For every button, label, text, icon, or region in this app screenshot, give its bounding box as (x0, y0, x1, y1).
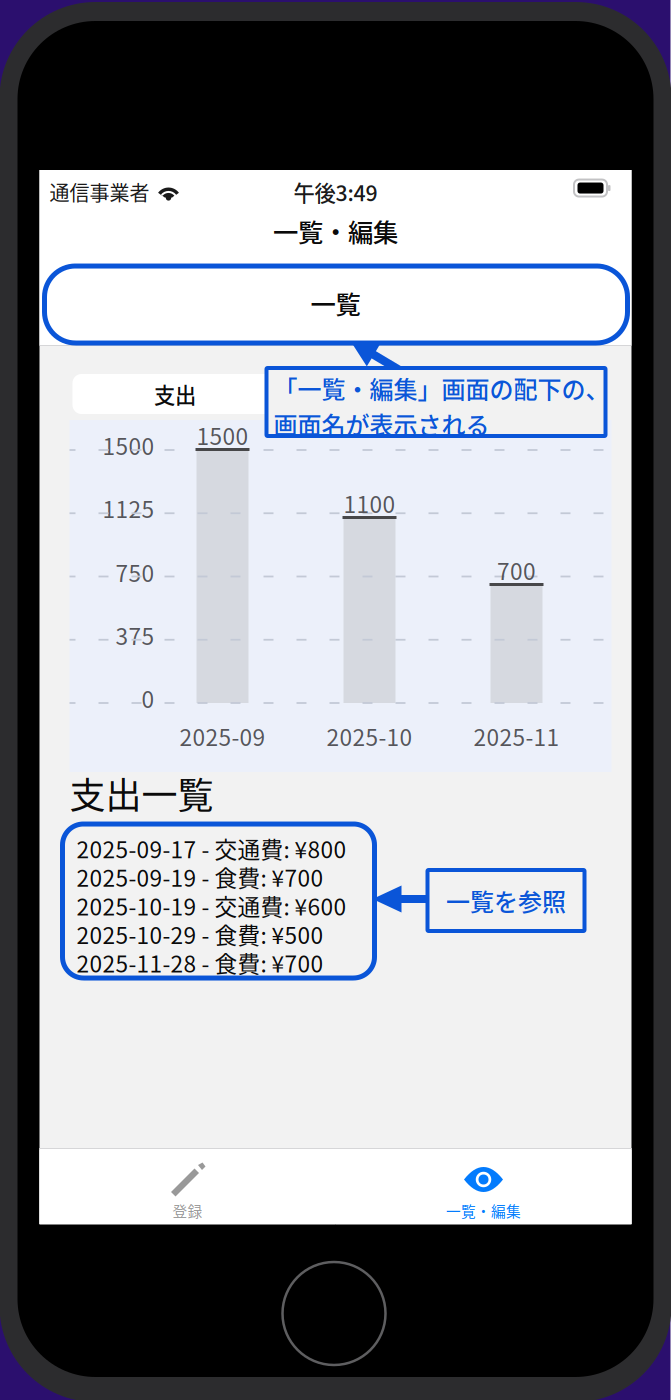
staticText: 1500 (196, 419, 248, 451)
button[interactable]: 登録 (39, 1148, 335, 1224)
staticText: 1125 (102, 492, 154, 524)
staticText: 支出一覧 (69, 767, 213, 819)
staticText: 2025-10 (326, 720, 412, 752)
staticText: 2025-09 (179, 720, 265, 752)
staticText: 2025-10-19 - 交通費: ¥600 (76, 889, 346, 922)
staticText: 画面名が表示される (273, 406, 489, 441)
staticText: 2025-11-28 - 食費: ¥700 (76, 946, 323, 979)
staticText: 一覧 (310, 285, 360, 321)
staticText: 375 (115, 619, 154, 651)
staticText: 一覧・編集 (446, 1200, 521, 1221)
staticText: 750 (115, 556, 154, 588)
staticText: 登録 (172, 1200, 202, 1221)
staticText: 2025-09-19 - 食費: ¥700 (76, 860, 323, 893)
staticText: 「一覧・編集」画面の配下の、 (273, 371, 609, 405)
staticText: 2025-10-29 - 食費: ¥500 (76, 918, 323, 950)
staticText: 通信事業者 (49, 178, 149, 207)
staticText: 一覧・編集 (273, 213, 398, 249)
staticText: 700 (497, 554, 536, 586)
staticText: 2025-11 (473, 720, 559, 752)
staticText: 午後3:49 (293, 177, 377, 207)
button[interactable]: 一覧・編集 (335, 1148, 631, 1224)
staticText: 0 (141, 682, 154, 714)
staticText: 1100 (343, 487, 395, 519)
staticText: 2025-09-17 - 交通費: ¥800 (76, 832, 346, 865)
staticText: 1500 (102, 429, 154, 461)
button[interactable]: 支出 (72, 374, 277, 414)
staticText: 一覧を参照 (446, 883, 566, 918)
staticText: 支出 (154, 379, 196, 409)
